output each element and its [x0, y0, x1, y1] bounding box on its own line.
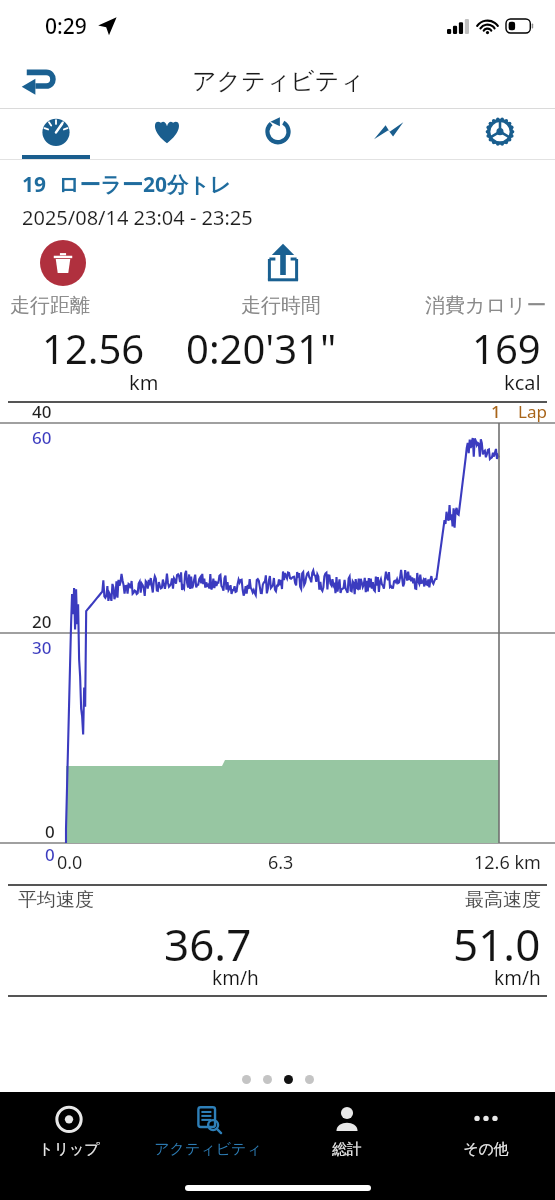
button[interactable]: その他	[416, 1092, 555, 1174]
button[interactable]: Share	[258, 238, 308, 288]
staticText: 12.56	[42, 321, 145, 367]
button[interactable]: Delete	[40, 240, 86, 286]
button[interactable]: Heart rate	[111, 109, 222, 160]
staticText: 169	[472, 321, 541, 367]
staticText: トリップ	[38, 1140, 100, 1159]
staticText: 0	[45, 820, 55, 843]
staticText: Lap	[518, 400, 547, 423]
staticText: 総計	[332, 1140, 362, 1159]
button[interactable]: Gear	[444, 109, 555, 160]
button[interactable]: Power	[333, 109, 444, 160]
staticText: 51.0	[453, 914, 541, 964]
staticText: ローラー20分トレ	[58, 170, 231, 199]
staticText: 1	[491, 400, 501, 423]
staticText: 40	[32, 400, 52, 423]
staticText: 60	[32, 426, 52, 449]
staticText: km/h	[494, 965, 541, 991]
staticText: 走行時間	[241, 293, 321, 318]
button[interactable]: Cadence	[222, 109, 333, 160]
staticText: アクティビティ	[192, 66, 364, 96]
staticText: 走行距離	[10, 293, 90, 318]
staticText: アクティビティ	[154, 1140, 262, 1159]
staticText: 2025/08/14 23:04 - 23:25	[22, 204, 253, 231]
staticText: 平均速度	[18, 888, 94, 912]
staticText: 19	[22, 170, 47, 199]
button[interactable]: Back	[14, 56, 64, 106]
staticText: km	[129, 369, 159, 396]
button[interactable]: Speed	[0, 109, 111, 160]
staticText: 36.7	[164, 914, 252, 964]
staticText: 6.3	[268, 850, 294, 875]
staticText: 0:20'31"	[186, 321, 337, 367]
staticText: 消費カロリー	[425, 293, 547, 318]
staticText: 20	[32, 610, 52, 633]
staticText: km/h	[212, 965, 259, 991]
button[interactable]: 総計	[277, 1092, 416, 1174]
staticText: kcal	[504, 369, 541, 396]
button[interactable]: トリップ	[0, 1092, 138, 1174]
staticText: 0:29	[45, 12, 87, 41]
staticText: 30	[32, 636, 52, 659]
staticText: その他	[463, 1140, 509, 1159]
staticText: 0.0	[57, 850, 83, 875]
staticText: 12.6 km	[474, 850, 541, 875]
staticText: 最高速度	[465, 888, 541, 912]
staticText: 0	[45, 843, 55, 866]
button[interactable]: アクティビティ	[138, 1092, 277, 1174]
